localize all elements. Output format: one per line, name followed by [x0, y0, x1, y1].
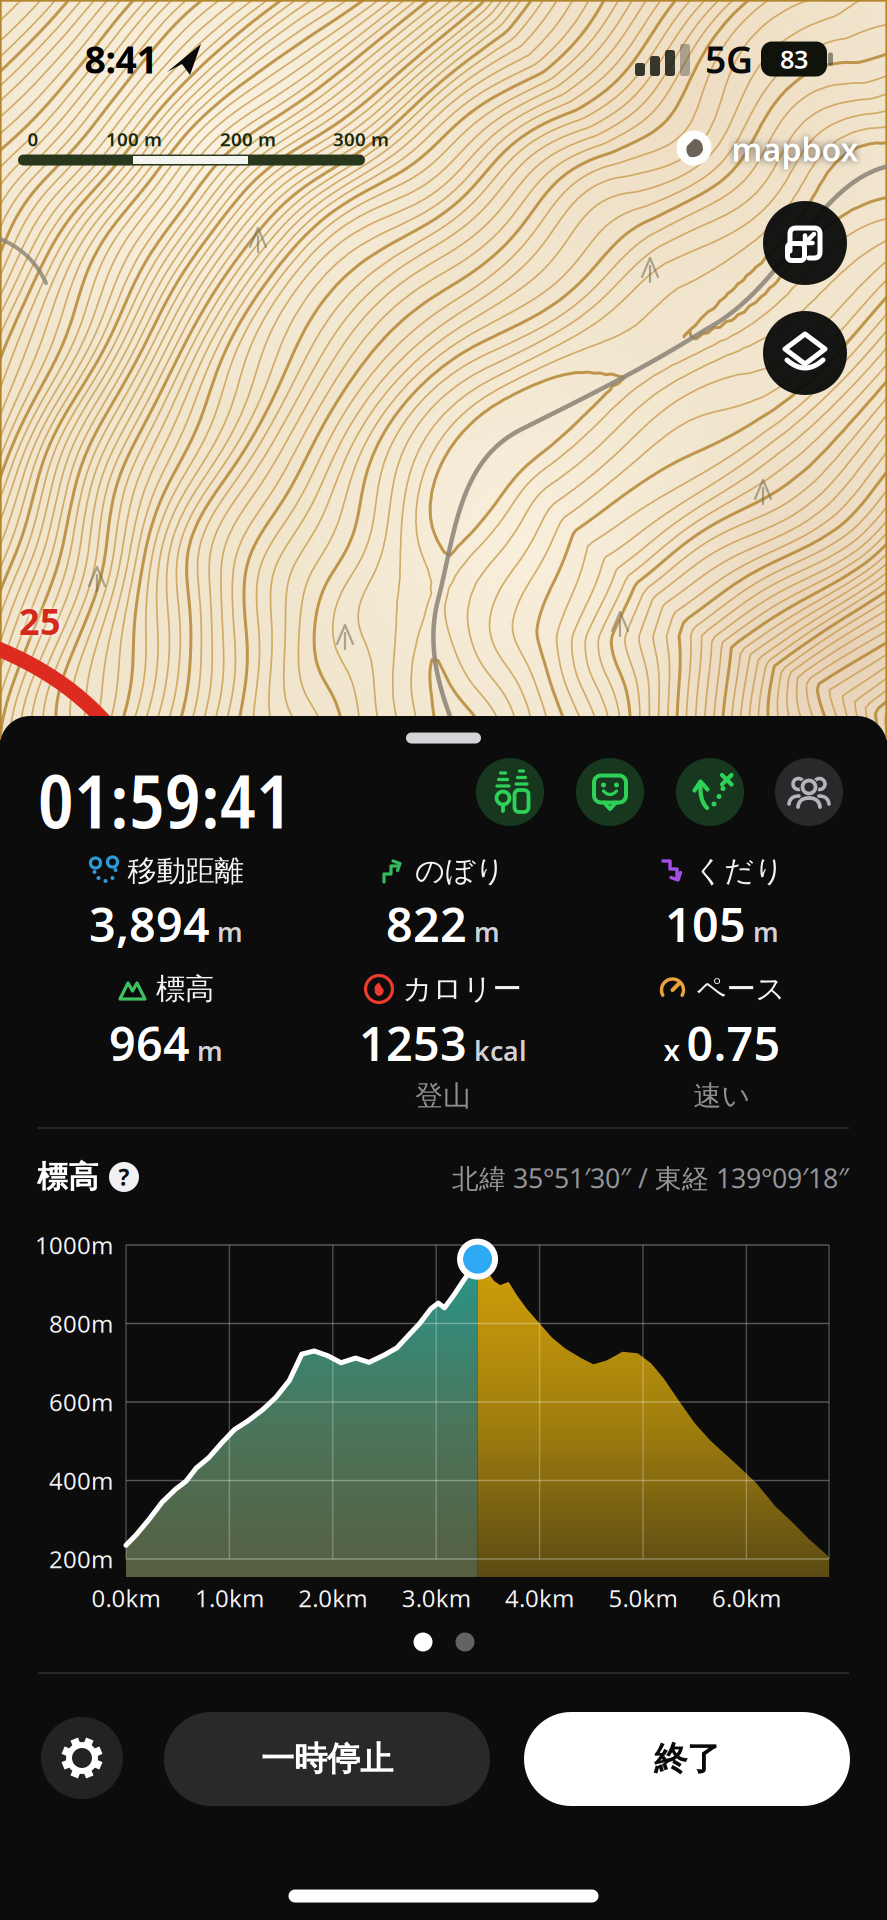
button[interactable]: Group: [775, 758, 843, 826]
staticText: 3,894: [89, 893, 210, 955]
staticText: 5.0km: [608, 1582, 677, 1614]
staticText: 200m: [49, 1543, 113, 1575]
staticText: 2.0km: [298, 1582, 367, 1614]
button[interactable]: Stamp: [576, 758, 644, 826]
staticText: 標高: [156, 971, 214, 1007]
staticText: 登山: [415, 1079, 471, 1113]
staticText: カロリー: [402, 971, 521, 1007]
staticText: x: [663, 1030, 679, 1069]
staticText: m: [474, 914, 500, 949]
staticText: 964: [109, 1012, 190, 1074]
staticText: 8:41: [84, 34, 157, 84]
staticText: kcal: [474, 1033, 527, 1068]
staticText: 822: [386, 893, 467, 955]
button[interactable]: 一時停止: [164, 1712, 490, 1806]
staticText: 終了: [654, 1738, 720, 1779]
staticText: m: [753, 914, 779, 949]
staticText: 0.0km: [91, 1582, 160, 1614]
staticText: のぼり: [415, 853, 505, 889]
staticText: 200 m: [220, 127, 276, 151]
button[interactable]: Beacon: [476, 758, 544, 826]
button[interactable]: Drag handle: [406, 732, 481, 743]
staticText: 5G: [705, 34, 753, 84]
button[interactable]: ページ 2: [455, 1632, 474, 1651]
staticText: m: [217, 914, 243, 949]
staticText: 3.0km: [402, 1582, 471, 1614]
staticText: 01:59:41: [38, 750, 292, 850]
staticText: 4.0km: [505, 1582, 574, 1614]
staticText: 北緯 35°51′30″ / 東経 139°09′18″: [452, 1160, 849, 1196]
staticText: 100 m: [106, 127, 162, 151]
button[interactable]: Map layers: [763, 311, 847, 395]
staticText: 0: [27, 127, 38, 151]
staticText: m: [197, 1033, 223, 1068]
button[interactable]: 終了: [524, 1712, 850, 1806]
staticText: ?: [118, 1162, 129, 1192]
staticText: 一時停止: [261, 1738, 393, 1779]
staticText: くだり: [694, 853, 784, 889]
staticText: 1253: [359, 1012, 467, 1074]
button[interactable]: Shrink map: [763, 201, 847, 285]
staticText: 速い: [693, 1079, 750, 1113]
staticText: 移動距離: [127, 853, 243, 889]
staticText: 25: [19, 597, 61, 645]
button[interactable]: ページ 1: [413, 1632, 432, 1651]
staticText: 1000m: [35, 1229, 113, 1261]
staticText: 標高: [37, 1158, 99, 1196]
button[interactable]: Route: [676, 758, 744, 826]
staticText: 83: [780, 42, 808, 76]
staticText: 800m: [49, 1308, 113, 1339]
staticText: 0.75: [686, 1012, 780, 1074]
staticText: 105: [665, 893, 746, 955]
staticText: 300 m: [333, 127, 389, 151]
staticText: ペース: [696, 971, 785, 1007]
button[interactable]: 標高について: [109, 1162, 139, 1192]
staticText: 1.0km: [195, 1582, 264, 1614]
staticText: 6.0km: [712, 1582, 781, 1614]
staticText: mapbox: [731, 128, 858, 170]
staticText: 400m: [49, 1465, 113, 1496]
staticText: 600m: [49, 1386, 113, 1418]
button[interactable]: 設定: [41, 1717, 123, 1799]
